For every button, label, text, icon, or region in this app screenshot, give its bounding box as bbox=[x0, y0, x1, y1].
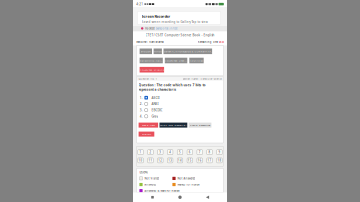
button[interactable]: 1 bbox=[138, 150, 143, 155]
staticText: 11 bbox=[148, 159, 152, 162]
staticText: SUBMIT bbox=[142, 132, 151, 136]
staticText: 7 bbox=[199, 150, 201, 154]
staticText: 15 bbox=[188, 159, 192, 162]
button[interactable]: 5 bbox=[177, 150, 183, 155]
button[interactable]: HINDI bbox=[154, 48, 162, 54]
staticText: Saved screen recording to Gallery Tap to… bbox=[142, 20, 208, 24]
staticText: Screen Recorder bbox=[142, 14, 171, 19]
button[interactable]: 16 bbox=[197, 158, 202, 163]
button[interactable]: 1. bbox=[140, 95, 224, 101]
button[interactable]: GENERAL KNOWLEDGE & CURRENT AFFAIRS bbox=[163, 48, 212, 54]
staticText: 1. bbox=[140, 96, 143, 100]
button[interactable]: 14 bbox=[177, 158, 183, 163]
button[interactable]: COMPUTER LITERACY bbox=[165, 58, 187, 63]
button[interactable]: 3 bbox=[157, 150, 163, 155]
staticText: Question No. 11 bbox=[138, 77, 157, 80]
staticText: HINDI bbox=[154, 50, 162, 53]
staticText: ADVANCED bbox=[189, 59, 203, 62]
staticText: 2 bbox=[149, 150, 151, 154]
button[interactable]: CLEAR RESPONSE bbox=[189, 123, 211, 128]
staticText: 10 bbox=[139, 159, 143, 162]
staticText: examportal.in/test bbox=[156, 27, 178, 30]
staticText: 6 bbox=[189, 150, 191, 154]
staticText: ASCII bbox=[151, 96, 159, 100]
staticText: 4. bbox=[140, 114, 143, 118]
staticText: Not Visited bbox=[144, 177, 159, 180]
staticText: 4 bbox=[169, 150, 171, 154]
button[interactable]: 15 bbox=[187, 158, 193, 163]
staticText: LEGEND bbox=[139, 170, 148, 174]
button[interactable]: 4. bbox=[140, 113, 224, 119]
staticText: 13 bbox=[168, 159, 172, 162]
button[interactable]: 18 bbox=[217, 158, 222, 163]
button[interactable]: Screen Recorder bbox=[137, 11, 221, 25]
staticText: 14 bbox=[178, 159, 182, 162]
staticText: ENGLISH bbox=[141, 50, 151, 53]
staticText: GENERAL KNOWLEDGE & CURRENT AFFAIRS bbox=[163, 50, 212, 53]
staticText: 1 bbox=[140, 150, 142, 154]
button[interactable]: SAVE & NEXT bbox=[139, 123, 158, 128]
button[interactable]: 3. bbox=[140, 107, 224, 113]
button[interactable]: Home bbox=[172, 192, 188, 202]
button[interactable]: REASONING ABILITY bbox=[140, 58, 163, 63]
staticText: Question : The code which uses 7 bits to… bbox=[139, 83, 206, 92]
button[interactable]: 8 bbox=[207, 150, 212, 155]
staticText: Not Answered bbox=[177, 177, 195, 180]
staticText: SAVE & NEXT bbox=[142, 123, 155, 127]
staticText: 4:21 bbox=[136, 2, 143, 6]
staticText: COMPUTER SCIENCE bbox=[140, 68, 164, 71]
staticText: Answered & Mark For Review bbox=[144, 189, 179, 192]
staticText: COMPUTER LITERACY bbox=[165, 59, 187, 62]
button[interactable]: 17 bbox=[207, 158, 212, 163]
staticText: REASONING ABILITY bbox=[140, 59, 163, 62]
button[interactable]: ADVANCED bbox=[189, 58, 204, 63]
button[interactable]: Back bbox=[199, 192, 215, 202]
staticText: 2. bbox=[140, 102, 143, 106]
staticText: EBCDIC bbox=[151, 108, 162, 112]
staticText: mocktest bbox=[145, 27, 155, 30]
staticText: 3 bbox=[159, 150, 161, 154]
button[interactable]: 4 bbox=[167, 150, 173, 155]
button[interactable]: 7 bbox=[197, 150, 202, 155]
button[interactable]: 13 bbox=[167, 158, 173, 163]
staticText: 9 bbox=[218, 150, 220, 154]
button[interactable]: MARK FOR REVIEW & NEXT bbox=[159, 123, 187, 128]
button[interactable]: 11 bbox=[148, 158, 153, 163]
button[interactable]: 2 bbox=[148, 150, 153, 155]
staticText: ANSI bbox=[151, 102, 158, 106]
staticText: CLEAR RESPONSE bbox=[190, 123, 210, 127]
button[interactable]: 6 bbox=[187, 150, 193, 155]
staticText: Answered bbox=[144, 183, 156, 186]
staticText: Welcome : Ram Sharma bbox=[136, 40, 163, 44]
staticText: 12 bbox=[158, 159, 162, 162]
staticText: 16 bbox=[198, 159, 202, 162]
button[interactable]: Recents bbox=[144, 192, 160, 202]
button[interactable]: ENGLISH bbox=[140, 48, 152, 54]
button[interactable]: 2. bbox=[140, 101, 224, 107]
button[interactable]: 10 bbox=[138, 158, 143, 163]
staticText: 18 bbox=[217, 159, 221, 162]
staticText: 3. bbox=[140, 108, 143, 112]
staticText: CTET/ CS/IT Computer Science Book - Engl… bbox=[145, 33, 214, 37]
button[interactable]: 12 bbox=[157, 158, 163, 163]
button[interactable]: 9 bbox=[217, 150, 222, 155]
staticText: MARK FOR REVIEW & NEXT bbox=[159, 123, 187, 127]
staticText: Remaining Time bbox=[198, 40, 219, 44]
staticText: Marked for Review bbox=[177, 183, 199, 186]
staticText: 8 bbox=[209, 150, 211, 154]
button[interactable]: COMPUTER SCIENCE bbox=[140, 67, 164, 72]
staticText: Section Name : Computer Science bbox=[183, 77, 222, 80]
staticText: 17 bbox=[208, 159, 212, 162]
staticText: 5 bbox=[179, 150, 181, 154]
staticText: Gray bbox=[151, 114, 158, 118]
button[interactable]: SUBMIT bbox=[139, 132, 154, 137]
staticText: 01:31 bbox=[219, 40, 224, 44]
